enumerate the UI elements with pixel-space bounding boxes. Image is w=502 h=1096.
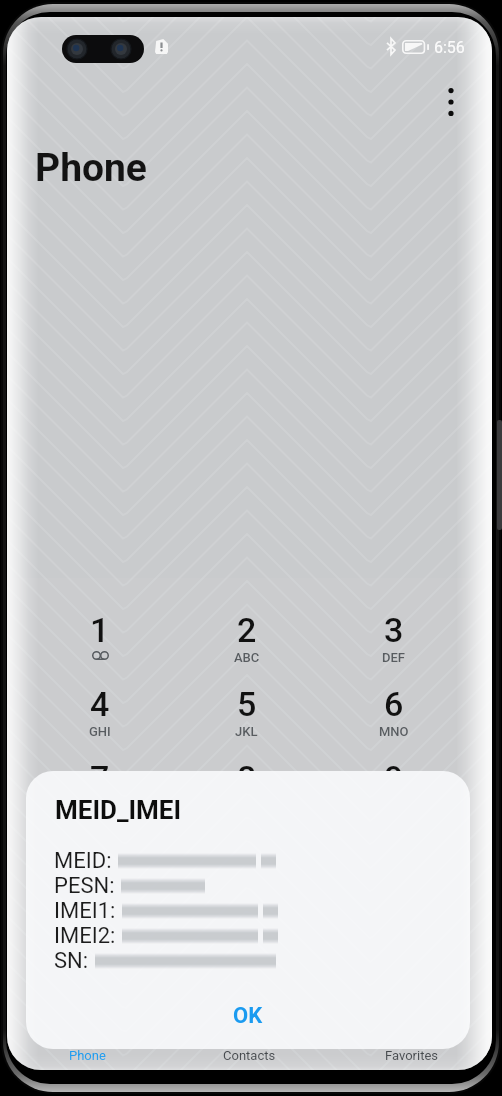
button[interactable]: 6 (320, 684, 467, 739)
button[interactable]: 7 (27, 758, 173, 813)
button[interactable]: Phone (7, 1038, 168, 1070)
staticText: Phone (69, 1048, 106, 1063)
button[interactable]: More options (429, 80, 473, 124)
button[interactable]: Favorites (330, 1038, 492, 1070)
button[interactable]: 3 (320, 610, 467, 665)
staticText: GHI (89, 724, 111, 739)
button[interactable]: Contacts (168, 1038, 330, 1070)
staticText: JKL (235, 724, 258, 739)
staticText: IMEI2: (54, 923, 116, 948)
staticText: 4 (90, 684, 110, 724)
staticText: 6 (384, 684, 404, 724)
staticText: 1 (90, 610, 110, 650)
staticText: PQRS (83, 798, 117, 813)
staticText: Contacts (223, 1048, 276, 1063)
staticText: OK (233, 1003, 263, 1029)
staticText: 5 (237, 684, 257, 724)
staticText: 2 (237, 610, 257, 650)
button[interactable]: 2 (173, 610, 320, 665)
staticText: 6:56 (434, 38, 465, 57)
button[interactable]: 4 (27, 684, 173, 739)
button[interactable]: 5 (173, 684, 320, 739)
staticText: IMEI1: (54, 898, 116, 923)
staticText: 8 (237, 758, 257, 798)
staticText: MNO (379, 724, 409, 739)
staticText: PESN: (54, 873, 115, 898)
staticText: ABC (234, 650, 260, 665)
staticText: Phone (35, 145, 147, 191)
staticText: Favorites (385, 1048, 438, 1063)
staticText: MEID_IMEI (55, 795, 182, 825)
staticText: 3 (384, 610, 404, 650)
button[interactable]: 1 (27, 610, 173, 660)
staticText: DEF (382, 650, 405, 665)
button[interactable]: 9 (320, 758, 467, 813)
staticText: 7 (90, 758, 110, 798)
staticText: SN: (54, 948, 89, 973)
staticText: 9 (384, 758, 404, 798)
button[interactable]: 8 (173, 758, 320, 813)
button[interactable]: OK (188, 995, 308, 1037)
staticText: MEID: (54, 848, 112, 873)
